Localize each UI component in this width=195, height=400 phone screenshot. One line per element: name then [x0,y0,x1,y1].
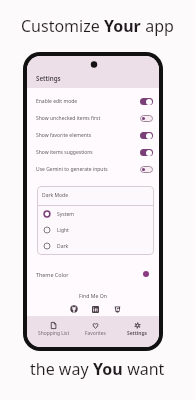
staticText: Dark [57,243,69,250]
staticText: Dark Mode [42,192,68,199]
button[interactable]: Shopping List [33,316,74,341]
button[interactable]: LinkedIn [92,306,99,313]
staticText: Settings [36,74,61,82]
button[interactable]: Show favorite elements [36,127,153,144]
staticText: the way [30,358,93,380]
button[interactable]: Show items suggestions [36,144,153,161]
button[interactable]: Use Gemini to generate inputs [36,161,153,178]
staticText: Find Me On [79,292,108,299]
staticText: Favorites [85,330,106,337]
button[interactable]: Toggle [140,166,153,173]
button[interactable]: Toggle [140,149,153,156]
staticText: Theme Color [36,271,69,278]
staticText: Shopping List [38,330,70,337]
staticText: Show unchecked items first [36,115,101,122]
button[interactable]: Favorites [75,316,116,341]
staticText: Enable edit mode [36,98,78,105]
staticText: Light [57,227,69,234]
button[interactable]: Dark [43,238,154,254]
staticText: System [57,211,74,218]
staticText: Settings [127,330,148,337]
staticText: Show items suggestions [36,149,93,156]
button[interactable]: Light [43,222,154,238]
staticText: Show favorite elements [36,132,92,139]
button[interactable]: Portfolio [114,306,121,313]
staticText: You [93,358,123,380]
button[interactable]: Enable edit mode [36,93,153,110]
button[interactable]: Toggle [140,132,153,139]
button[interactable]: Show unchecked items first [36,110,153,127]
staticText: Customize [21,15,104,37]
button[interactable]: GitHub [70,305,78,313]
staticText: Your [104,15,141,37]
button[interactable]: Toggle [140,98,153,105]
button[interactable]: Theme Color [36,267,149,282]
staticText: app [141,15,174,37]
staticText: Use Gemini to generate inputs [36,166,108,173]
button[interactable]: Settings [117,316,158,341]
button[interactable]: System [43,206,154,222]
staticText: want [123,358,165,380]
button[interactable]: Toggle [140,115,153,122]
